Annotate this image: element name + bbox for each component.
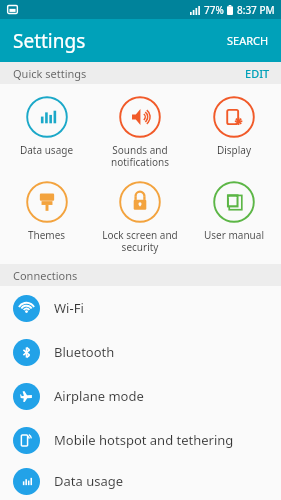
- staticText: Themes: [2, 228, 91, 242]
- button[interactable]: EDIT: [234, 62, 281, 84]
- button[interactable]: User manual: [187, 177, 281, 246]
- staticText: Display: [189, 143, 279, 157]
- staticText: Settings: [13, 28, 86, 54]
- button[interactable]: Wi-Fi: [0, 286, 281, 330]
- staticText: 77%: [204, 3, 224, 17]
- staticText: Sounds and notifications: [95, 143, 185, 169]
- staticText: Wi-Fi: [54, 299, 84, 317]
- button[interactable]: Sounds and notifications: [93, 92, 187, 173]
- staticText: Lock screen and security: [95, 228, 185, 254]
- staticText: Bluetooth: [54, 343, 115, 361]
- staticText: User manual: [189, 228, 279, 242]
- staticText: Connections: [13, 268, 78, 283]
- staticText: Quick settings: [13, 66, 87, 81]
- staticText: Data usage: [54, 472, 124, 490]
- staticText: Data usage: [2, 143, 91, 157]
- button[interactable]: Airplane mode: [0, 374, 281, 418]
- staticText: 8:37 PM: [237, 3, 275, 17]
- button[interactable]: Themes: [0, 177, 93, 246]
- staticText: EDIT: [245, 66, 270, 80]
- button[interactable]: SEARCH: [215, 23, 281, 58]
- button[interactable]: Data usage: [0, 462, 281, 500]
- staticText: SEARCH: [227, 33, 269, 48]
- staticText: Airplane mode: [54, 387, 144, 405]
- button[interactable]: Lock screen and security: [93, 177, 187, 258]
- button[interactable]: Mobile hotspot and tethering: [0, 418, 281, 462]
- button[interactable]: Bluetooth: [0, 330, 281, 374]
- button[interactable]: Display: [187, 92, 281, 161]
- staticText: Mobile hotspot and tethering: [54, 431, 234, 449]
- button[interactable]: Data usage: [0, 92, 93, 161]
